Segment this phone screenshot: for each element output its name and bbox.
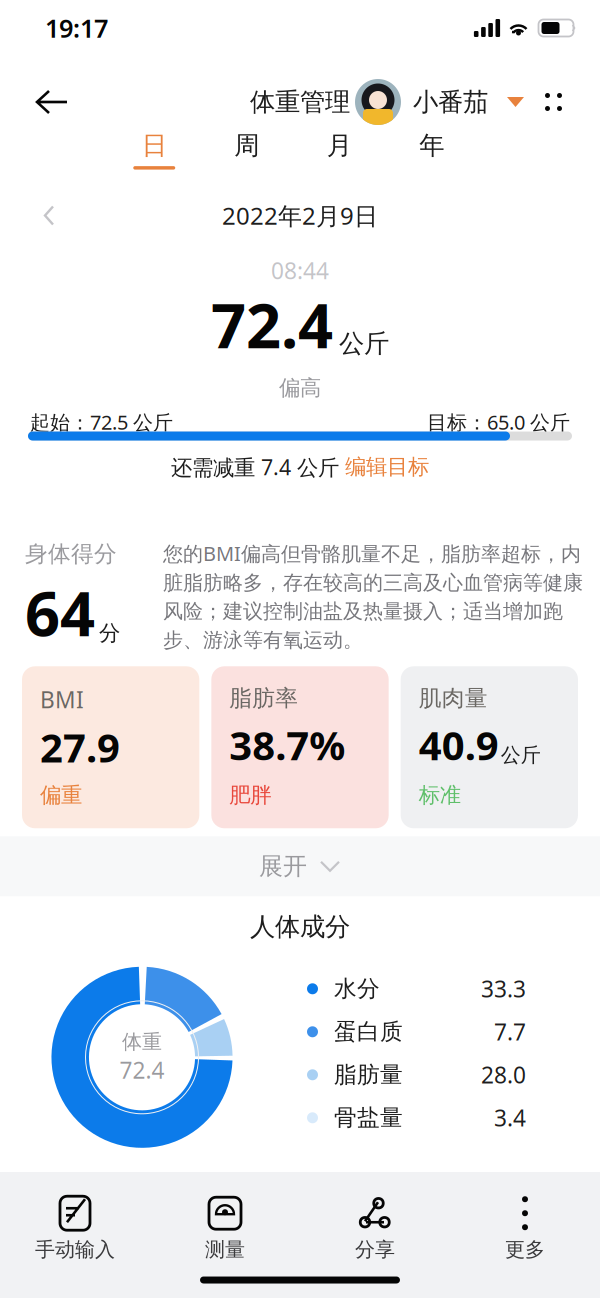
staticText: 28.0 [481,1060,526,1090]
staticText: 40.9 [419,718,499,771]
staticText: 19:17 [45,11,108,45]
staticText: 偏高 [279,375,321,401]
staticText: 7.7 [494,1017,526,1047]
staticText: 72.4 [119,1055,164,1085]
button[interactable]: 展开 [0,836,600,896]
staticText: BMI [40,684,84,714]
button[interactable]: 周 [200,130,293,170]
staticText: 您的BMI偏高但骨骼肌量不足，脂肪率超标，内脏脂肪略多，存在较高的三高及心血管病… [163,540,583,652]
staticText: 日 [142,130,167,161]
staticText: 身体得分 [25,540,117,568]
staticText: 72.4 [211,284,333,365]
staticText: 肌肉量 [419,684,488,712]
staticText: 周 [234,130,259,161]
button[interactable]: More options [524,83,562,121]
button[interactable]: 编辑目标 [345,454,429,480]
staticText: 27.9 [40,720,120,773]
staticText: 蛋白质 [334,1018,403,1046]
staticText: 编辑目标 [345,454,429,480]
staticText: 64 [25,572,95,653]
button[interactable]: 手动输入 [0,1194,150,1262]
button[interactable]: 更多 [450,1194,600,1262]
staticText: 水分 [334,975,380,1003]
staticText: 月 [327,130,352,161]
staticText: 体重 [122,1029,162,1054]
button[interactable]: 月 [293,130,385,170]
staticText: 目标：65.0 公斤 [427,409,570,435]
staticText: 38.7% [229,718,345,771]
button[interactable]: 测量 [150,1194,300,1262]
button[interactable]: Previous day [34,196,64,234]
staticText: 脂肪率 [229,684,298,712]
staticText: 骨盐量 [334,1104,403,1132]
staticText: 测量 [205,1237,245,1262]
staticText: 还需减重 7.4 公斤 [171,453,345,481]
staticText: 年 [419,130,444,161]
staticText: 公斤 [501,743,541,767]
staticText: 体重管理 [250,86,350,117]
staticText: 33.3 [481,974,526,1004]
staticText: 人体成分 [250,911,350,942]
staticText: 分享 [355,1237,395,1262]
button[interactable]: Back [28,78,76,126]
staticText: 小番茄 [413,86,488,117]
staticText: 公斤 [339,328,389,359]
staticText: 标准 [419,782,461,808]
button[interactable]: 日 [108,130,200,170]
staticText: 展开 [259,852,307,881]
staticText: 手动输入 [35,1237,115,1262]
staticText: 肥胖 [229,782,271,808]
staticText: 08:44 [271,255,329,285]
button[interactable]: 体重管理 [250,73,524,131]
staticText: 偏重 [40,782,82,808]
staticText: 2022年2月9日 [222,200,378,231]
staticText: 脂肪量 [334,1061,403,1089]
staticText: 起始：72.5 公斤 [30,409,173,435]
staticText: 更多 [505,1237,545,1262]
staticText: 3.4 [494,1103,526,1133]
staticText: 分 [99,620,120,646]
button[interactable]: 年 [385,130,478,170]
button[interactable]: 分享 [300,1194,450,1262]
